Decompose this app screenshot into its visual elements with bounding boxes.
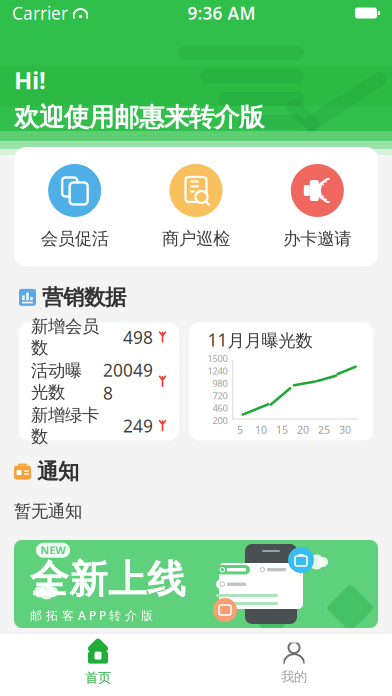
- staticText: 欢迎使用邮惠来转介版: [14, 102, 264, 133]
- staticText: Hi!: [14, 64, 46, 96]
- button[interactable]: 商户巡检: [135, 164, 257, 249]
- staticText: 会员促活: [41, 228, 109, 249]
- staticText: 980: [212, 377, 227, 389]
- staticText: 新增绿卡数: [31, 404, 99, 447]
- staticText: 营销数据: [42, 284, 126, 310]
- staticText: 5: [237, 422, 243, 437]
- staticText: 249: [123, 414, 153, 437]
- button[interactable]: 会员促活: [14, 164, 135, 249]
- staticText: NEW: [40, 543, 65, 557]
- staticText: 商户巡检: [162, 228, 230, 249]
- button[interactable]: 首页: [0, 642, 196, 686]
- staticText: 办卡邀请: [283, 228, 351, 249]
- staticText: 新增会员数: [31, 316, 99, 358]
- staticText: 20: [297, 422, 309, 437]
- staticText: 9:36 AM: [187, 1, 255, 24]
- staticText: 1240: [207, 365, 227, 377]
- button[interactable]: 办卡邀请: [257, 164, 378, 249]
- staticText: 我的: [281, 669, 307, 685]
- staticText: 暂无通知: [14, 501, 82, 522]
- staticText: 通知: [37, 458, 79, 485]
- staticText: 活动曝光数: [31, 360, 82, 403]
- staticText: 邮 拓 客 A P P 转 介 版: [30, 607, 153, 623]
- staticText: 498: [123, 326, 153, 349]
- staticText: 15: [276, 422, 288, 437]
- staticText: 30: [339, 422, 351, 437]
- staticText: 11月月曝光数: [207, 328, 312, 351]
- staticText: 首页: [85, 670, 111, 686]
- button[interactable]: NEW: [0, 522, 392, 628]
- staticText: 200498: [103, 358, 153, 404]
- staticText: 720: [212, 389, 227, 402]
- staticText: 全新上线: [30, 556, 186, 603]
- staticText: 1500: [207, 352, 227, 365]
- staticText: 10: [255, 422, 267, 437]
- staticText: 200: [212, 414, 227, 427]
- staticText: 460: [212, 402, 227, 414]
- button[interactable]: 我的: [196, 643, 392, 685]
- staticText: 25: [318, 422, 330, 437]
- staticText: Carrier: [12, 1, 68, 24]
